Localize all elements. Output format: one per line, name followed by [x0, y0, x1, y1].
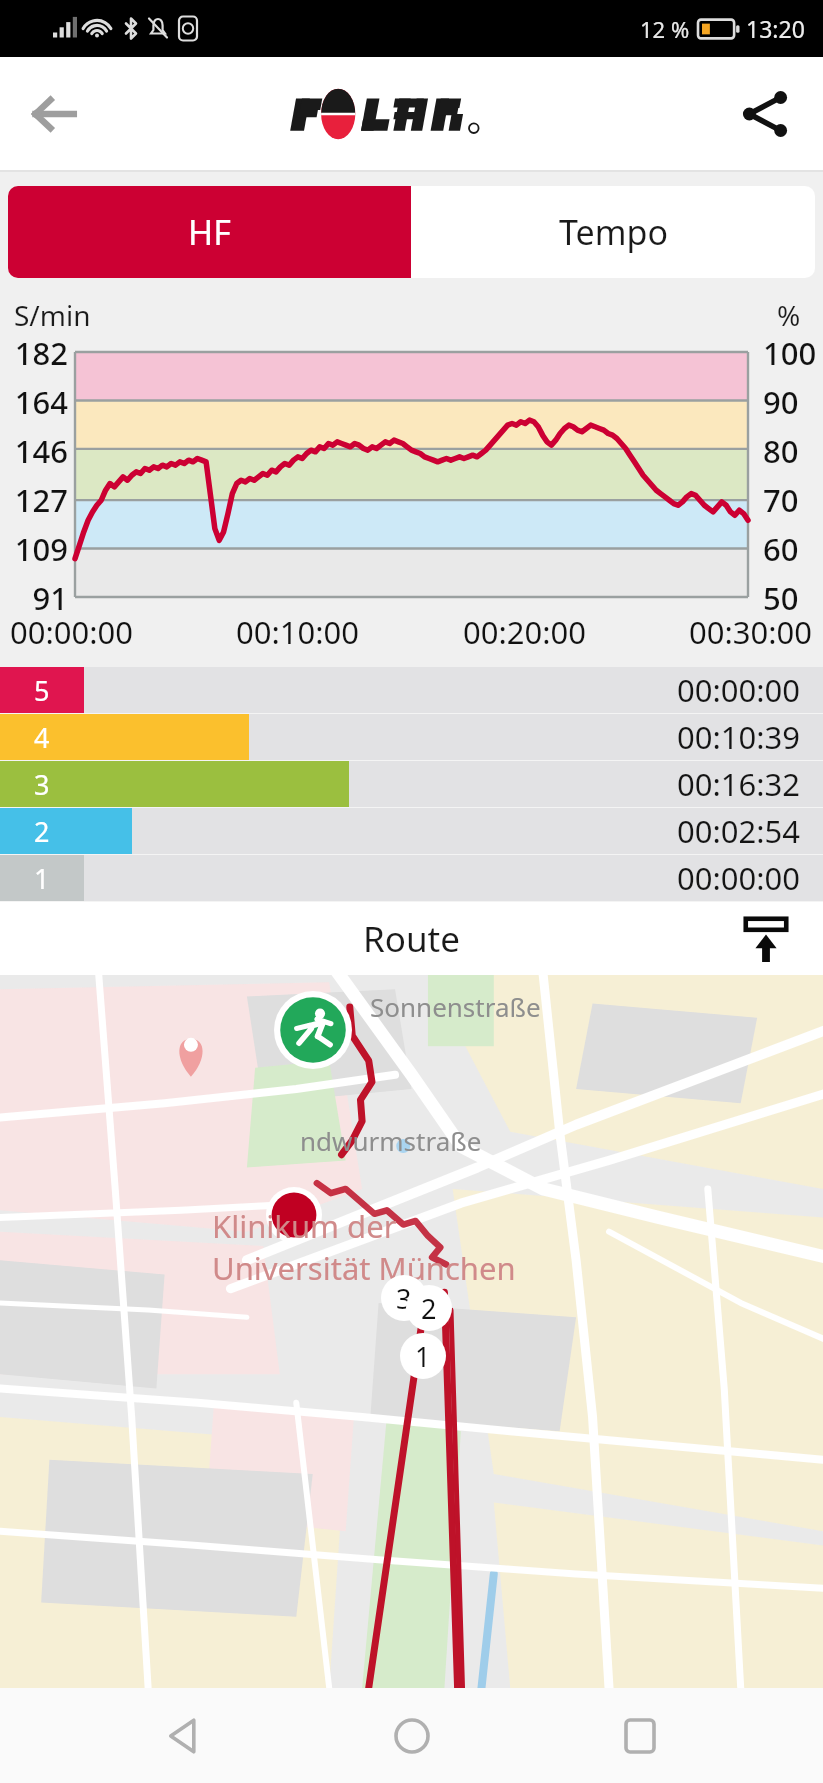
staticText: Universität München [212, 1247, 516, 1289]
staticText: 00:02:54 [677, 810, 801, 852]
staticText: 2 [421, 1290, 437, 1327]
staticText: 164 [0, 381, 68, 423]
staticText: 00:00:00 [677, 669, 801, 711]
staticText: 3 [396, 1280, 412, 1317]
staticText: 00:30:00 [689, 611, 813, 653]
staticText: 13:20 [746, 13, 805, 44]
staticText: % [777, 296, 801, 334]
staticText: 90 [763, 381, 823, 423]
staticText: 109 [0, 528, 68, 570]
button[interactable]: HF [8, 186, 411, 278]
staticText: S/min [14, 296, 91, 334]
button[interactable]: 5 [0, 667, 823, 713]
staticText: 00:00:00 [10, 611, 134, 653]
staticText: 00:10:00 [236, 611, 360, 653]
button[interactable]: Tempo [411, 186, 815, 278]
staticText: HF [188, 209, 231, 255]
staticText: 127 [0, 479, 68, 521]
staticText: 146 [0, 430, 68, 472]
staticText: Klinikum der [212, 1205, 397, 1247]
button[interactable]: Expand map [737, 910, 795, 968]
staticText: 60 [763, 528, 823, 570]
staticText: ndwurmstraße [300, 1123, 482, 1158]
button[interactable]: 1 [400, 1333, 446, 1379]
staticText: 1 [34, 860, 50, 897]
button[interactable]: 2 [406, 1285, 452, 1331]
staticText: 100 [763, 332, 823, 374]
staticText: 5 [34, 672, 50, 709]
staticText: Tempo [559, 209, 668, 255]
staticText: 00:00:00 [677, 857, 801, 899]
button[interactable]: Back [18, 78, 90, 150]
staticText: Sonnenstraße [370, 989, 541, 1024]
staticText: 3 [34, 766, 50, 803]
staticText: 80 [763, 430, 823, 472]
staticText: 182 [0, 332, 68, 374]
button[interactable]: Share [729, 78, 801, 150]
staticText: 00:10:39 [677, 716, 801, 758]
button[interactable]: 1 [0, 855, 823, 901]
staticText: 1 [415, 1338, 431, 1375]
button[interactable]: 3 [381, 1275, 427, 1321]
button[interactable]: Home [367, 1691, 457, 1781]
button[interactable]: 2 [0, 808, 823, 854]
button[interactable]: 3 [0, 761, 823, 807]
staticText: 00:16:32 [677, 763, 801, 805]
staticText: 50 [763, 577, 823, 619]
staticText: 12 % [640, 14, 690, 44]
button[interactable]: Route [0, 902, 823, 975]
button[interactable]: 4 [0, 714, 823, 760]
staticText: 70 [763, 479, 823, 521]
button[interactable]: Recents [595, 1691, 685, 1781]
staticText: 2 [34, 813, 50, 850]
button[interactable]: Back [138, 1691, 228, 1781]
staticText: Route [363, 915, 460, 963]
staticText: 4 [34, 719, 50, 756]
staticText: 91 [0, 577, 68, 619]
staticText: 00:20:00 [463, 611, 587, 653]
